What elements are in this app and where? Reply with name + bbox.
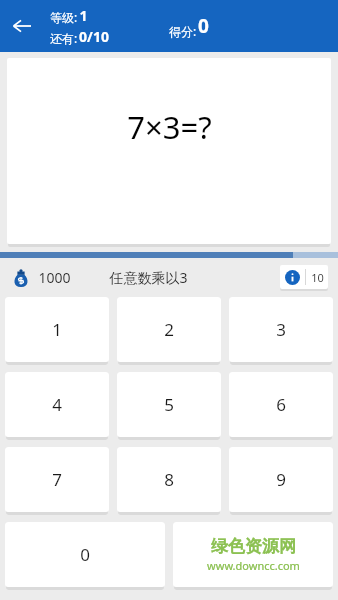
button[interactable]: 4 bbox=[5, 372, 109, 440]
button[interactable]: 5 bbox=[117, 372, 221, 440]
button[interactable]: 8 bbox=[117, 447, 221, 515]
button[interactable]: 0 bbox=[5, 522, 165, 590]
staticText: 4 bbox=[52, 393, 62, 416]
staticText: 1 bbox=[52, 318, 62, 341]
staticText: 3 bbox=[276, 318, 286, 341]
staticText: 等级: bbox=[48, 9, 79, 25]
staticText: 任意数乘以3 bbox=[109, 268, 188, 287]
staticText: 0/10 bbox=[79, 27, 109, 46]
button[interactable]: 1 bbox=[5, 297, 109, 365]
staticText: 0 bbox=[198, 13, 209, 39]
button[interactable]: 6 bbox=[229, 372, 333, 440]
staticText: 5 bbox=[164, 393, 174, 416]
staticText: 7×3=? bbox=[127, 106, 212, 148]
button[interactable]: 绿色资源网 bbox=[173, 522, 333, 590]
staticText: 得分: bbox=[167, 23, 198, 39]
staticText: 7 bbox=[52, 468, 62, 491]
staticText: 还有: bbox=[48, 30, 79, 46]
button[interactable]: Hint info bbox=[280, 265, 328, 291]
staticText: 0 bbox=[80, 543, 90, 566]
staticText: 绿色资源网 bbox=[211, 536, 296, 557]
staticText: 6 bbox=[276, 393, 286, 416]
staticText: 1000 bbox=[38, 268, 71, 287]
button[interactable]: Back bbox=[0, 4, 44, 48]
staticText: 9 bbox=[276, 468, 286, 491]
staticText: www.downcc.com bbox=[207, 558, 300, 573]
button[interactable]: 2 bbox=[117, 297, 221, 365]
staticText: 2 bbox=[164, 318, 174, 341]
button[interactable]: 9 bbox=[229, 447, 333, 515]
button[interactable]: 3 bbox=[229, 297, 333, 365]
staticText: 10 bbox=[311, 270, 324, 285]
staticText: 1 bbox=[79, 6, 88, 25]
button[interactable]: 7 bbox=[5, 447, 109, 515]
staticText: 8 bbox=[164, 468, 174, 491]
